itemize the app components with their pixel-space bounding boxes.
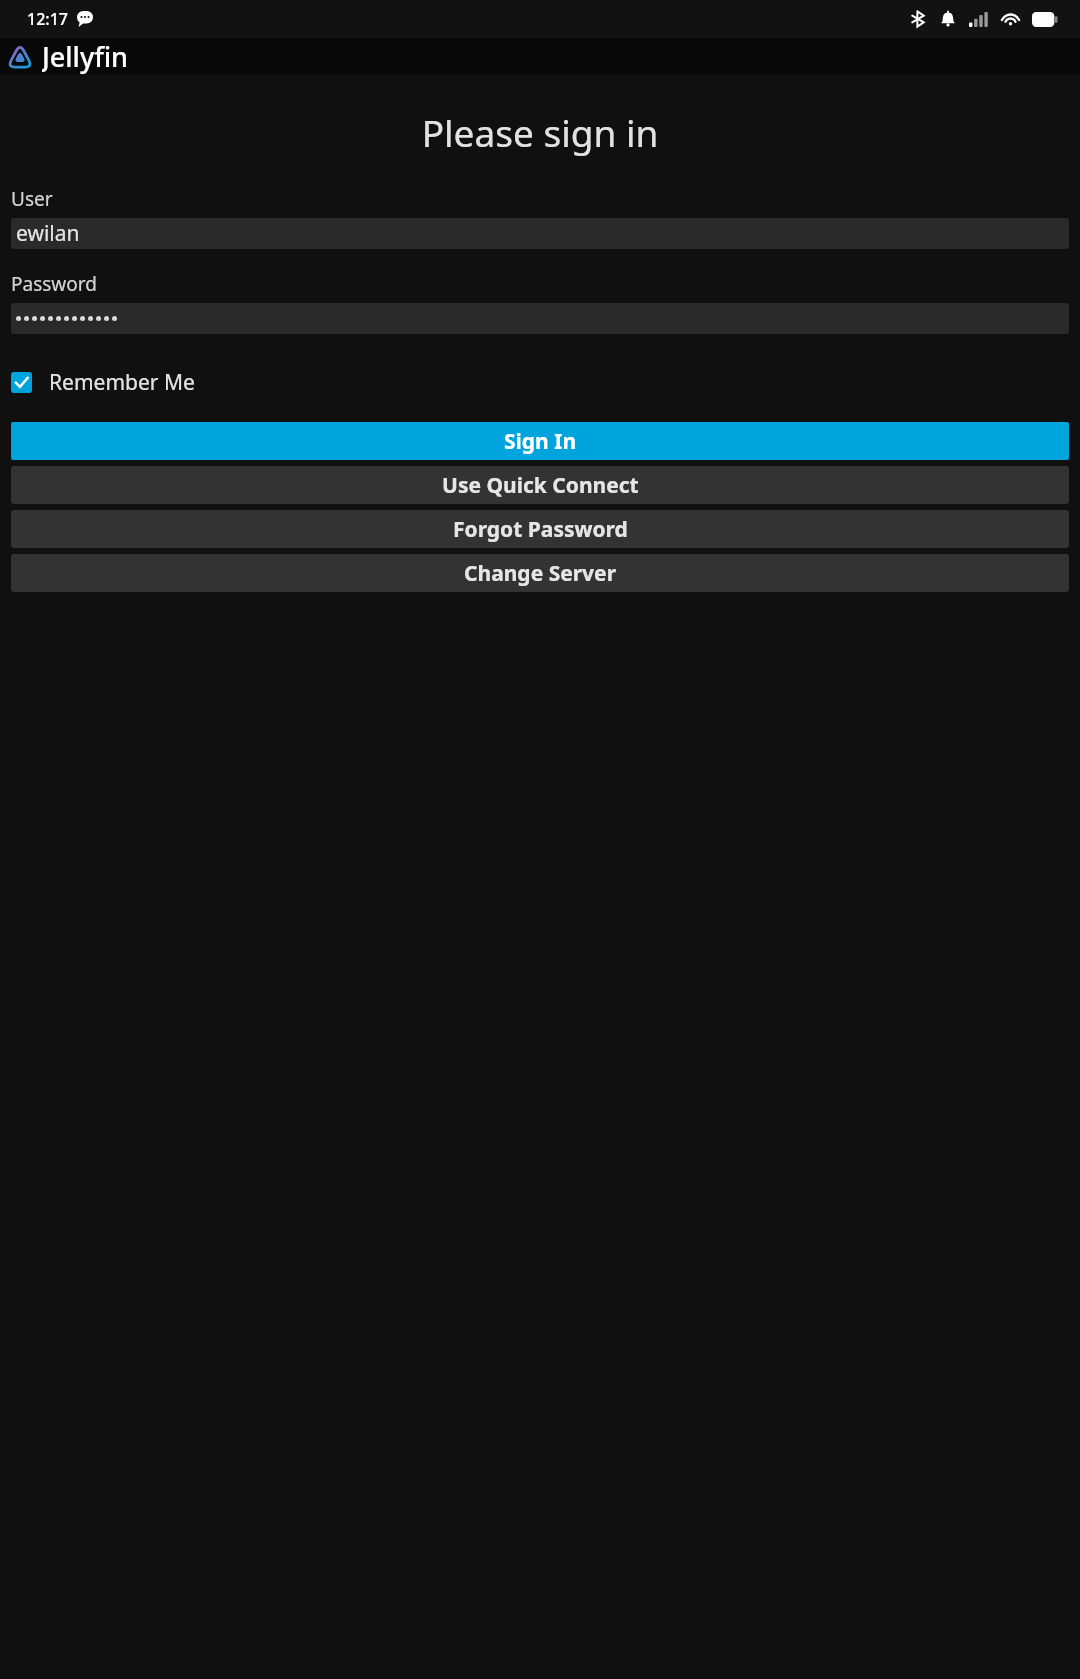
staticText: 12:17: [27, 8, 68, 30]
button[interactable]: Change Server: [11, 554, 1069, 592]
staticText: Change Server: [464, 559, 617, 588]
button[interactable]: Sign In: [11, 422, 1069, 460]
button[interactable]: ewilan: [11, 218, 1069, 249]
staticText: Forgot Password: [453, 515, 628, 544]
button[interactable]: Remember Me: [11, 368, 195, 397]
staticText: Jellyfin: [42, 38, 128, 74]
staticText: Password: [11, 271, 97, 297]
staticText: Remember Me: [49, 368, 195, 397]
button[interactable]: Use Quick Connect: [11, 466, 1069, 504]
staticText: Use Quick Connect: [442, 471, 639, 500]
button[interactable]: [11, 303, 1069, 334]
staticText: Sign In: [504, 427, 577, 456]
staticText: Please sign in: [0, 107, 1080, 157]
button[interactable]: Forgot Password: [11, 510, 1069, 548]
staticText: User: [11, 186, 53, 212]
staticText: ewilan: [16, 219, 80, 248]
